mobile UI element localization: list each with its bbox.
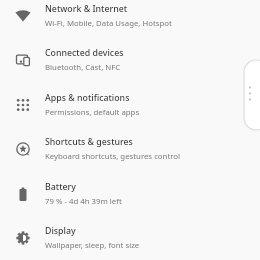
button[interactable]: Network & Internet	[0, 0, 260, 38]
staticText: Shortcuts & gestures	[45, 136, 133, 148]
staticText: Permissions, default apps	[45, 107, 140, 118]
button[interactable]: Display	[0, 216, 260, 260]
button[interactable]: Apps & notifications	[0, 83, 260, 127]
staticText: Apps & notifications	[45, 92, 130, 104]
staticText: Wi-Fi, Mobile, Data Usage, Hotspot	[45, 18, 172, 29]
staticText: 79 % - 4d 4h 39m left	[45, 196, 122, 207]
button[interactable]: Connected devices	[0, 38, 260, 82]
button[interactable]: Battery	[0, 172, 260, 216]
button[interactable]: Shortcuts & gestures	[0, 127, 260, 171]
staticText: Display	[45, 225, 76, 237]
staticText: Bluetooth, Cast, NFC	[45, 62, 121, 73]
staticText: Keyboard shortcuts, gestures control	[45, 151, 181, 162]
staticText: Network & Internet	[45, 3, 128, 15]
staticText: Battery	[45, 181, 76, 193]
staticText: Wallpaper, sleep, font size	[45, 240, 140, 251]
staticText: Connected devices	[45, 47, 124, 59]
